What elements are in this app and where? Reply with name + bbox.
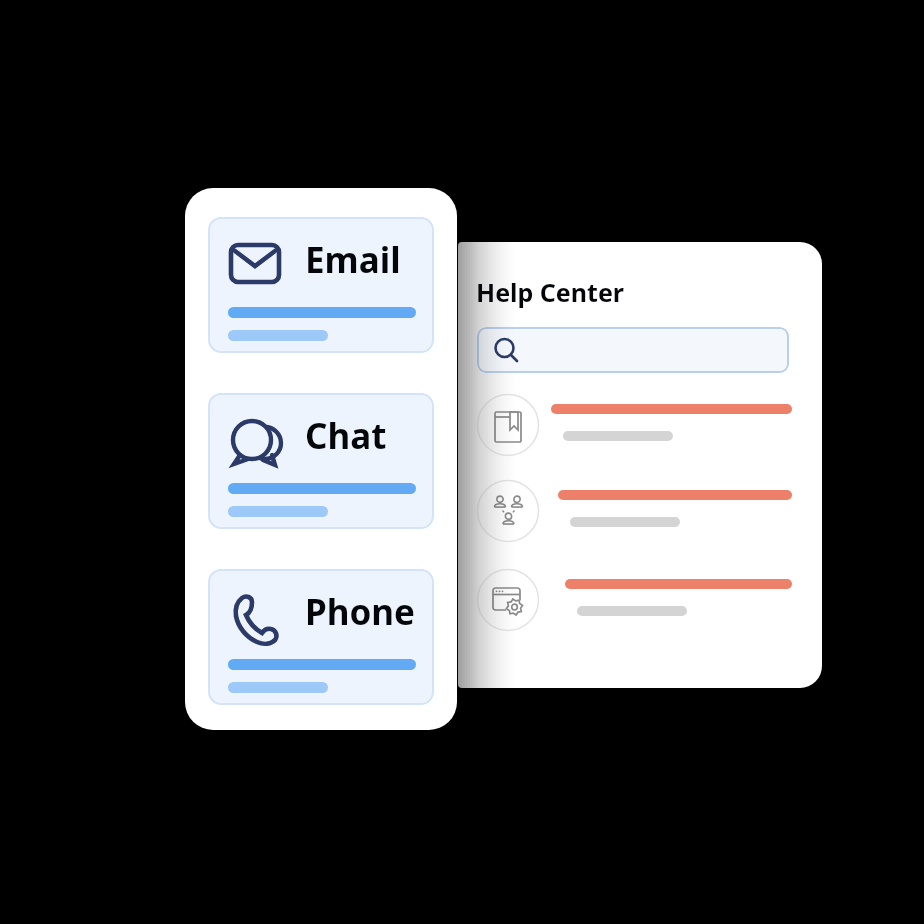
- button[interactable]: Help article 1: [476, 394, 794, 460]
- button[interactable]: Help article 2: [476, 480, 794, 546]
- button[interactable]: [208, 569, 434, 705]
- button[interactable]: [208, 217, 434, 353]
- button[interactable]: [208, 393, 434, 529]
- button[interactable]: Search help articles: [477, 327, 789, 373]
- button[interactable]: Help article 3: [476, 569, 794, 635]
